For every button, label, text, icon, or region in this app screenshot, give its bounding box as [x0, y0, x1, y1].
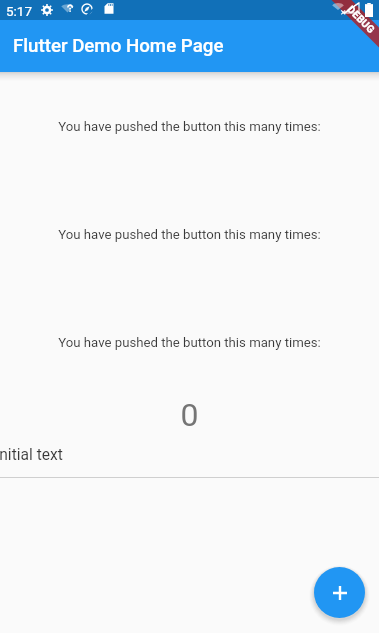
staticText: You have pushed the button this many tim…	[0, 335, 379, 350]
staticText: 5:17	[6, 3, 33, 19]
staticText: 0	[0, 396, 379, 434]
staticText: DEBUG	[345, 4, 377, 36]
staticText: You have pushed the button this many tim…	[0, 227, 379, 242]
button[interactable]: Initial text	[0, 434, 379, 478]
staticText: Initial text	[0, 446, 63, 464]
button[interactable]: Increment	[314, 567, 365, 618]
staticText: You have pushed the button this many tim…	[0, 119, 379, 134]
staticText: Flutter Demo Home Page	[13, 35, 224, 57]
